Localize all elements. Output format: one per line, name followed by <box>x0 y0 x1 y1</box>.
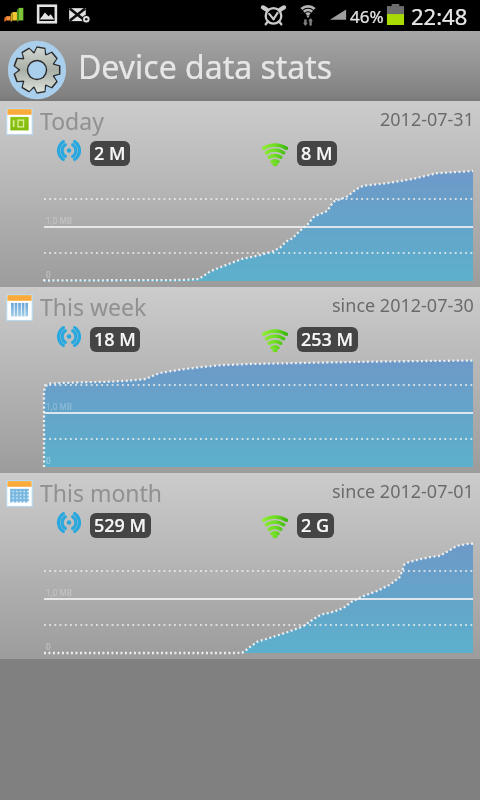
button[interactable]: 1,0 MB <box>0 287 480 473</box>
staticText: 0 <box>46 455 51 466</box>
staticText: 22:48 <box>411 1 468 31</box>
staticText: 1,0 MB <box>46 401 72 412</box>
button[interactable]: Device data stats <box>0 31 480 101</box>
staticText: 0 <box>46 641 51 652</box>
staticText: 1,0 MB <box>46 587 72 598</box>
staticText: 46% <box>350 5 384 28</box>
staticText: 2 M <box>94 141 126 166</box>
staticText: 0 <box>46 269 51 280</box>
staticText: This month <box>40 477 163 508</box>
staticText: since 2012-07-30 <box>332 293 474 318</box>
staticText: 2012-07-31 <box>380 107 474 132</box>
staticText: 253 M <box>301 327 354 352</box>
staticText: since 2012-07-01 <box>332 479 474 504</box>
staticText: 529 M <box>94 513 147 538</box>
staticText: 18 M <box>94 327 136 352</box>
staticText: 1,0 MB <box>46 215 72 226</box>
staticText: 2 G <box>301 513 330 538</box>
staticText: Device data stats <box>78 45 333 89</box>
staticText: This week <box>40 291 147 322</box>
button[interactable]: 1,0 MB <box>0 101 480 287</box>
staticText: 8 M <box>301 141 333 166</box>
button[interactable]: 1,0 MB <box>0 473 480 659</box>
staticText: Today <box>40 105 104 136</box>
